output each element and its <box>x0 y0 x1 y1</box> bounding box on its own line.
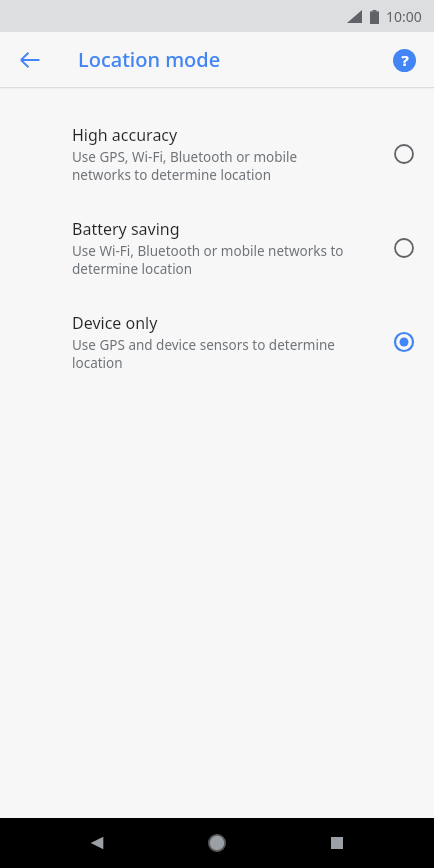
staticText: Use GPS, Wi-Fi, Bluetooth or mobile netw… <box>72 148 298 184</box>
staticText: Battery saving <box>72 218 180 240</box>
button[interactable]: Battery saving <box>0 201 434 295</box>
button[interactable]: Recent apps <box>315 821 359 865</box>
button[interactable]: Device only <box>0 295 434 389</box>
staticText: Location mode <box>78 46 221 73</box>
staticText: 10:00 <box>386 7 422 26</box>
button[interactable]: Back <box>8 38 52 82</box>
button[interactable]: Back <box>75 821 119 865</box>
staticText: ? <box>401 50 409 70</box>
button[interactable]: Help <box>382 38 426 82</box>
button[interactable]: Home <box>195 821 239 865</box>
staticText: Use GPS and device sensors to determine … <box>72 336 335 372</box>
staticText: High accuracy <box>72 124 178 146</box>
staticText: Use Wi-Fi, Bluetooth or mobile networks … <box>72 242 344 278</box>
button[interactable]: High accuracy <box>0 107 434 201</box>
staticText: Device only <box>72 312 158 334</box>
